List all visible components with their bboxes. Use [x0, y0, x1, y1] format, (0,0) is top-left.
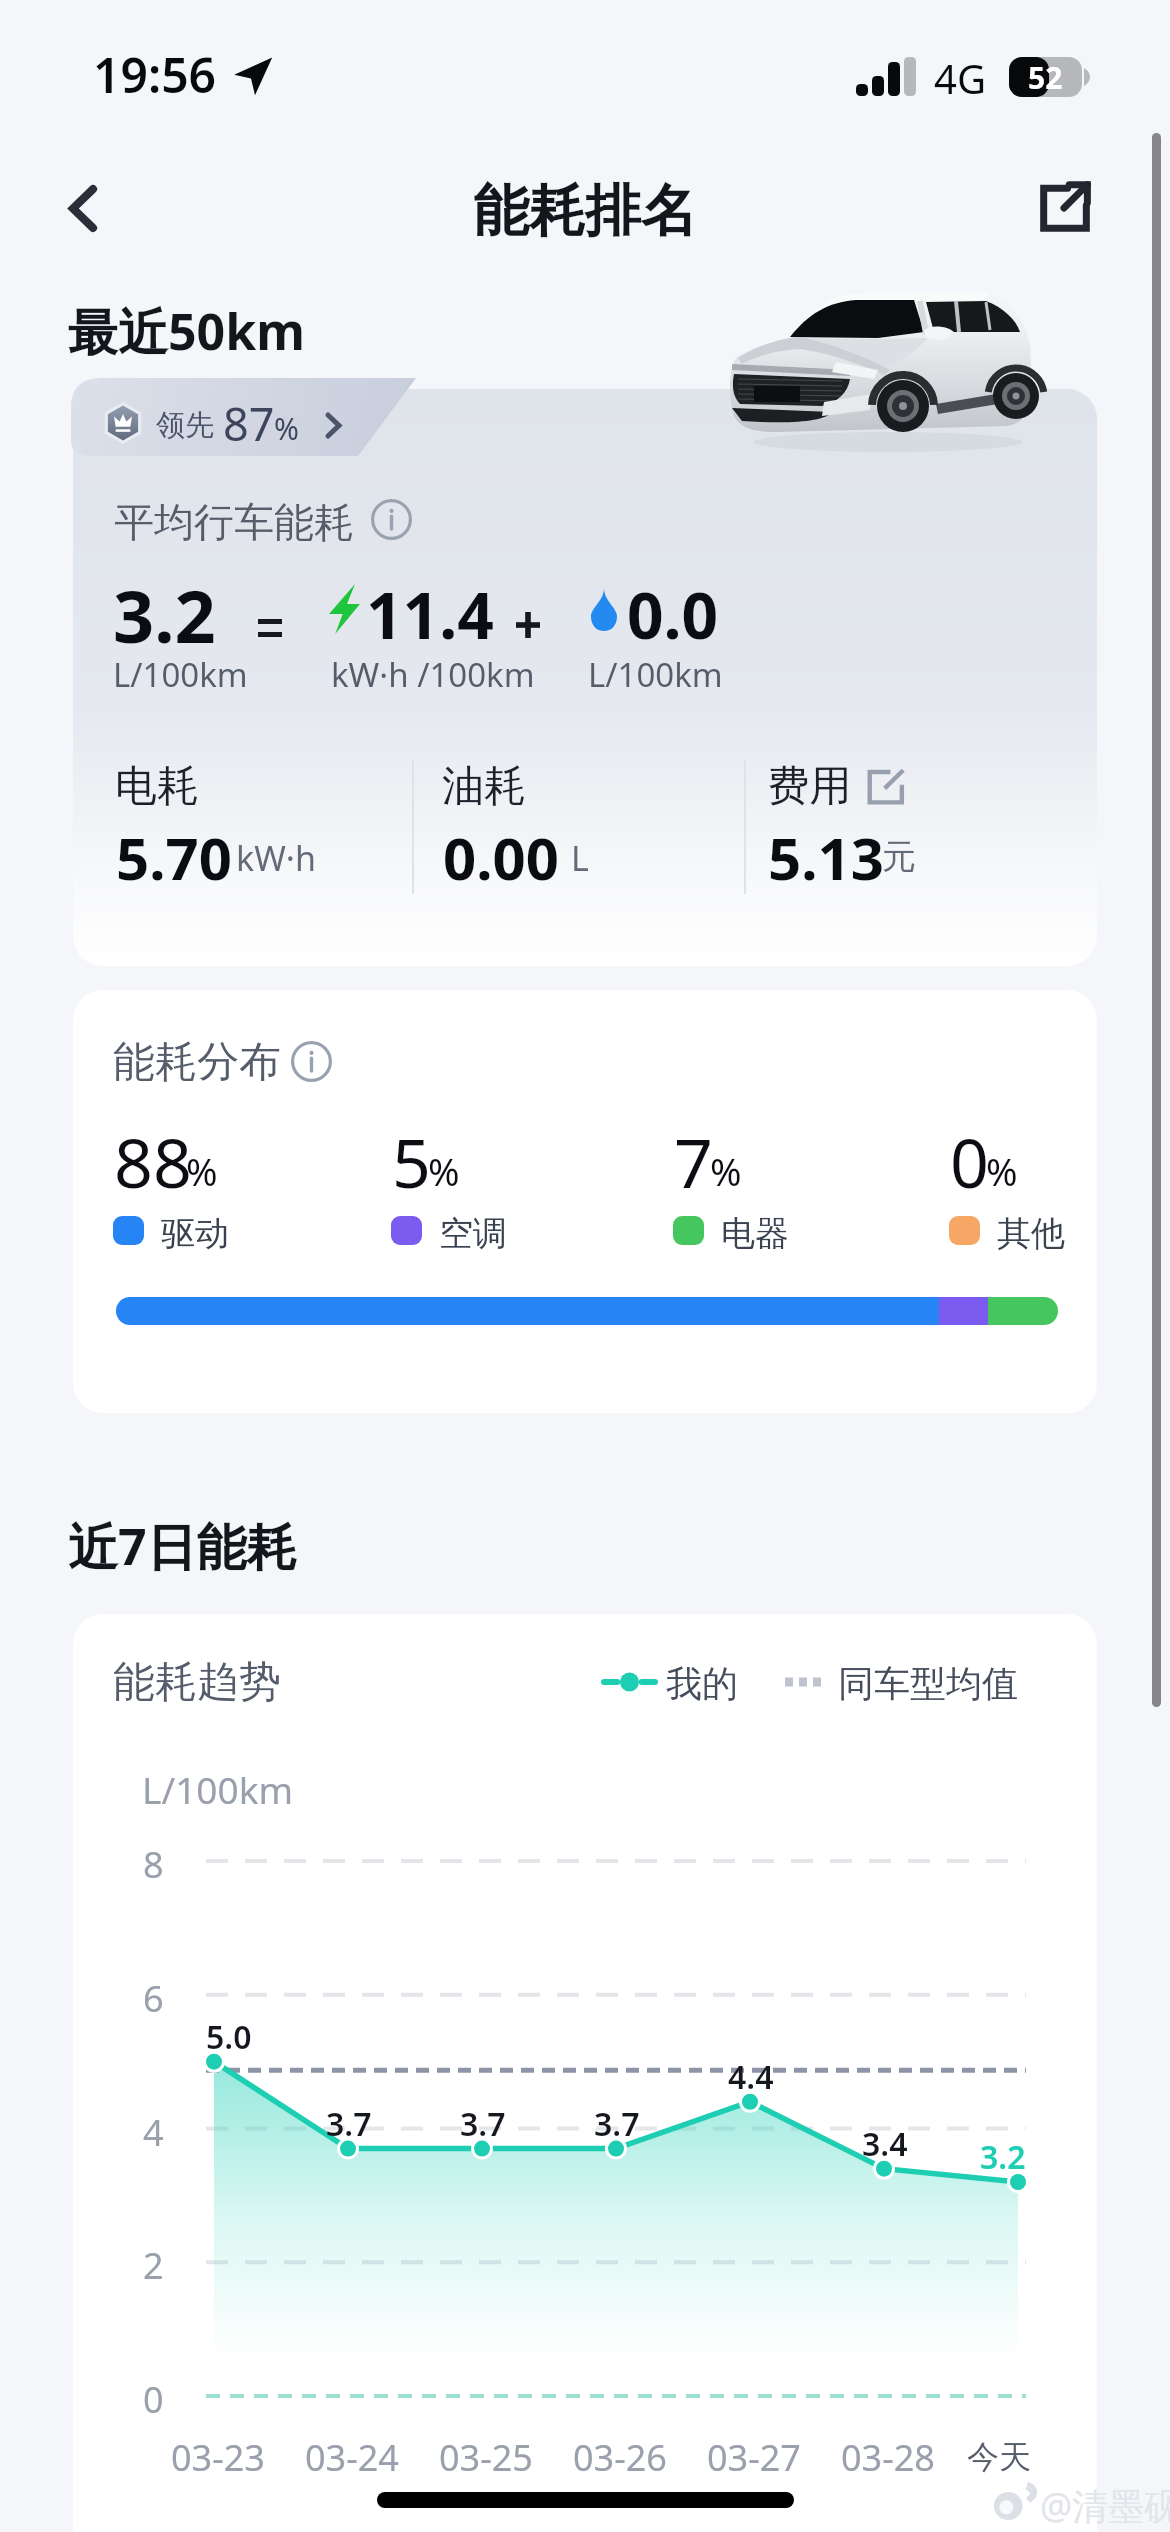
staticText: 3.2: [113, 566, 216, 664]
staticText: 电器: [721, 1212, 789, 1255]
staticText: 元: [882, 835, 916, 878]
staticText: 6: [143, 1974, 164, 2023]
staticText: 其他: [997, 1212, 1065, 1255]
staticText: 03-26: [573, 2433, 667, 2482]
staticText: L/100km: [588, 652, 723, 697]
staticText: 03-27: [707, 2433, 801, 2482]
staticText: L: [571, 835, 589, 881]
staticText: 近7日能耗: [68, 1512, 297, 1580]
staticText: 5.0: [206, 2015, 252, 2059]
staticText: %: [986, 1145, 1018, 1197]
staticText: 3.7: [460, 2102, 506, 2146]
staticText: 4G: [934, 51, 986, 105]
staticText: 领先: [156, 407, 214, 444]
button[interactable]: Edit cost: [864, 765, 908, 809]
staticText: 8: [143, 1840, 164, 1889]
button[interactable]: Share: [1011, 153, 1119, 261]
staticText: 87: [223, 393, 275, 454]
staticText: 0.0: [627, 571, 719, 658]
staticText: kW·h: [236, 835, 316, 881]
staticText: 3.7: [326, 2102, 372, 2146]
button[interactable]: Back: [26, 152, 136, 262]
staticText: 0.00: [443, 818, 559, 897]
button[interactable]: 能耗分布说明: [291, 1041, 332, 1082]
staticText: 0: [950, 1115, 989, 1208]
staticText: 我的: [666, 1661, 738, 1706]
staticText: 驱动: [161, 1212, 229, 1255]
staticText: kW·h /100km: [331, 652, 535, 697]
staticText: 03-28: [841, 2433, 935, 2482]
staticText: @清墨砚: [1040, 2481, 1170, 2530]
button[interactable]: 平均行车能耗说明: [371, 499, 412, 540]
staticText: 03-25: [439, 2433, 533, 2482]
staticText: 5: [392, 1115, 431, 1208]
staticText: 11.4: [366, 571, 494, 658]
button[interactable]: 领先 87% 排名详情: [71, 378, 416, 456]
staticText: 03-24: [305, 2433, 399, 2482]
staticText: 5.70: [116, 818, 232, 897]
staticText: 52: [1028, 57, 1063, 97]
staticText: 0: [143, 2375, 164, 2424]
staticText: 能耗趋势: [113, 1656, 281, 1709]
staticText: 3.2: [980, 2135, 1026, 2179]
staticText: 今天: [967, 2437, 1031, 2477]
staticText: 2: [143, 2241, 164, 2290]
staticText: L/100km: [142, 1764, 293, 1814]
staticText: %: [428, 1145, 460, 1197]
staticText: 电耗: [115, 760, 199, 813]
staticText: 油耗: [442, 760, 526, 813]
staticText: 空调: [439, 1212, 507, 1255]
staticText: 88: [114, 1115, 192, 1208]
staticText: %: [186, 1145, 218, 1197]
staticText: 平均行车能耗: [114, 497, 354, 547]
staticText: 19:56: [93, 42, 217, 107]
staticText: 3.4: [862, 2122, 908, 2166]
staticText: L/100km: [113, 652, 248, 697]
staticText: 3.7: [594, 2102, 640, 2146]
staticText: 03-23: [171, 2433, 265, 2482]
staticText: %: [710, 1145, 742, 1197]
staticText: 同车型均值: [838, 1661, 1018, 1706]
staticText: 能耗分布: [113, 1036, 281, 1089]
staticText: 能耗排名: [473, 176, 697, 247]
staticText: 费用: [767, 760, 851, 813]
staticText: 5.13: [768, 818, 884, 897]
staticText: 4: [143, 2108, 164, 2157]
staticText: %: [274, 408, 299, 449]
staticText: 4.4: [728, 2055, 774, 2099]
staticText: 最近50km: [68, 297, 305, 365]
staticText: 7: [674, 1115, 713, 1208]
